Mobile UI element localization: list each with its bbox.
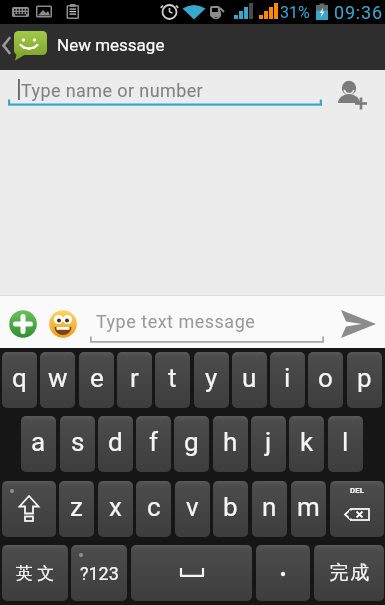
button[interactable]: b <box>213 481 248 537</box>
staticText: u <box>242 363 257 393</box>
button[interactable]: f <box>136 416 171 472</box>
button[interactable]: e <box>79 352 114 408</box>
staticText: 完成 <box>329 561 370 585</box>
staticText: a <box>31 427 46 457</box>
button[interactable] <box>131 545 252 601</box>
button[interactable]: 英 文 <box>2 545 68 601</box>
staticText: x <box>109 492 122 522</box>
staticText: j <box>265 427 272 457</box>
staticText: z <box>70 492 83 522</box>
button[interactable]: n <box>252 481 287 537</box>
button[interactable] <box>2 481 56 537</box>
button[interactable]: p <box>347 352 382 408</box>
button[interactable]: ?123 <box>71 545 127 601</box>
button[interactable]: c <box>136 481 171 537</box>
staticText: b <box>223 492 238 522</box>
staticText: o <box>318 363 333 393</box>
button[interactable]: q <box>2 352 37 408</box>
button[interactable]: y <box>194 352 229 408</box>
button[interactable]: l <box>328 416 363 472</box>
staticText: 31% <box>280 3 310 22</box>
button[interactable]: s <box>60 416 95 472</box>
button[interactable] <box>332 303 384 341</box>
staticText: w <box>48 363 68 393</box>
button[interactable]: x <box>98 481 133 537</box>
button[interactable]: DEL <box>330 481 384 537</box>
button[interactable]: Type text message <box>88 297 326 345</box>
button[interactable]: k <box>289 416 324 472</box>
button[interactable]: u <box>232 352 267 408</box>
button[interactable] <box>48 309 78 339</box>
staticText: y <box>205 363 218 393</box>
staticText: DEL <box>350 486 365 495</box>
button[interactable]: 完成 <box>314 545 384 601</box>
staticText: v <box>186 492 199 522</box>
staticText: 英 文 <box>16 563 55 584</box>
staticText: h <box>223 427 238 457</box>
button[interactable]: w <box>40 352 75 408</box>
button[interactable]: z <box>59 481 94 537</box>
staticText: d <box>108 427 123 457</box>
staticText: Type text message <box>96 311 256 332</box>
staticText: c <box>147 492 161 522</box>
button[interactable]: v <box>175 481 210 537</box>
staticText: l <box>342 427 349 457</box>
button[interactable]: m <box>291 481 326 537</box>
button[interactable]: d <box>98 416 133 472</box>
staticText: t <box>168 363 177 393</box>
staticText: ?123 <box>80 563 119 584</box>
button[interactable]: h <box>213 416 248 472</box>
button[interactable]: r <box>117 352 152 408</box>
button[interactable] <box>0 70 330 110</box>
staticText: 09:36 <box>334 2 383 23</box>
staticText: m <box>297 492 320 522</box>
staticText: q <box>12 363 27 393</box>
staticText: s <box>71 427 85 457</box>
staticText: i <box>284 363 291 393</box>
button[interactable]: i <box>270 352 305 408</box>
staticText: p <box>357 363 372 393</box>
staticText: g <box>184 427 199 457</box>
button[interactable]: g <box>174 416 209 472</box>
button[interactable]: a <box>21 416 56 472</box>
staticText: f <box>149 427 159 457</box>
button[interactable] <box>0 24 56 70</box>
staticText: New message <box>57 35 165 55</box>
button[interactable]: t <box>155 352 190 408</box>
staticText: e <box>90 363 104 393</box>
button[interactable]: j <box>251 416 286 472</box>
staticText: Type name or number <box>21 80 204 101</box>
button[interactable]: o <box>308 352 343 408</box>
button[interactable] <box>8 309 38 339</box>
staticText: r <box>130 363 139 393</box>
staticText: n <box>262 492 277 522</box>
button[interactable] <box>256 545 310 601</box>
button[interactable] <box>327 72 375 110</box>
staticText: k <box>300 427 314 457</box>
